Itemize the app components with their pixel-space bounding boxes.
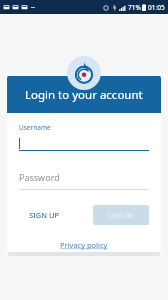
staticText: 01:05	[148, 3, 165, 12]
other: App logo	[67, 56, 101, 90]
staticText: Password	[19, 171, 60, 183]
button[interactable]: Privacy policy	[56, 238, 112, 252]
button[interactable]: Password	[19, 171, 149, 190]
button[interactable]: SIGN UP	[19, 204, 70, 226]
staticText: Login to your account	[25, 87, 143, 103]
staticText: SIGN UP	[29, 210, 60, 220]
staticText: Privacy policy	[60, 240, 108, 250]
staticText: Username	[19, 123, 51, 132]
staticText: LOG IN	[108, 210, 134, 220]
button[interactable]: LOG IN	[93, 205, 149, 225]
staticText: 71%	[128, 3, 141, 12]
button[interactable]: Username	[19, 123, 149, 151]
